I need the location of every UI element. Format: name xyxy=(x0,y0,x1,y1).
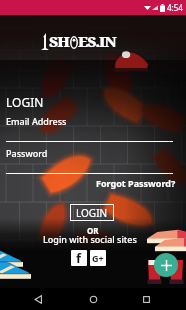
button[interactable]: Google Plus xyxy=(90,250,106,266)
button[interactable]: Back xyxy=(30,291,46,307)
button[interactable]: Home xyxy=(85,291,101,307)
staticText: f xyxy=(76,250,82,265)
staticText: Email Address xyxy=(6,115,67,127)
staticText: ES.IN xyxy=(78,31,116,51)
staticText: OR xyxy=(87,225,99,236)
button[interactable]: Add xyxy=(154,253,178,277)
staticText: Forgot Password? xyxy=(96,177,176,189)
button[interactable]: LOGIN xyxy=(70,204,114,221)
staticText: G+ xyxy=(92,252,104,264)
staticText: Password xyxy=(6,147,48,159)
staticText: LOGIN xyxy=(76,206,108,220)
staticText: 4:54 xyxy=(167,2,183,13)
staticText: LOGIN xyxy=(6,94,44,110)
staticText: Login with social sites xyxy=(43,233,137,245)
button[interactable]: Forgot Password? xyxy=(96,177,176,189)
staticText: SH xyxy=(49,31,70,51)
button[interactable]: Recents xyxy=(138,291,154,307)
button[interactable]: Facebook xyxy=(71,250,87,266)
